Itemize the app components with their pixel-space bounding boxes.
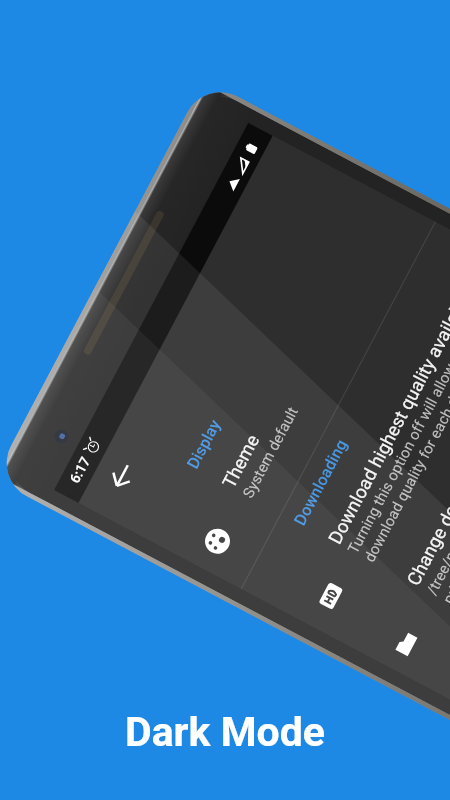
staticText: Download highest quality available <box>324 286 450 548</box>
staticText: Downloading <box>290 436 351 528</box>
staticText: Turning this option off will allow you t… <box>344 257 450 565</box>
button[interactable]: Display <box>174 348 263 483</box>
staticText: Dark Mode <box>125 708 325 756</box>
button[interactable] <box>352 280 450 690</box>
staticText: Theme <box>218 430 264 492</box>
staticText: Change download location <box>402 385 450 589</box>
button[interactable] <box>272 238 450 649</box>
staticText: System default <box>239 404 301 501</box>
staticText: /tree/primary:Download/document/ primary… <box>423 378 450 606</box>
button[interactable] <box>166 182 422 582</box>
button[interactable]: Downloading <box>281 384 381 540</box>
staticText: Display <box>183 416 224 472</box>
staticText: 6:17 <box>67 454 94 486</box>
button[interactable]: Navigate up <box>84 439 159 513</box>
